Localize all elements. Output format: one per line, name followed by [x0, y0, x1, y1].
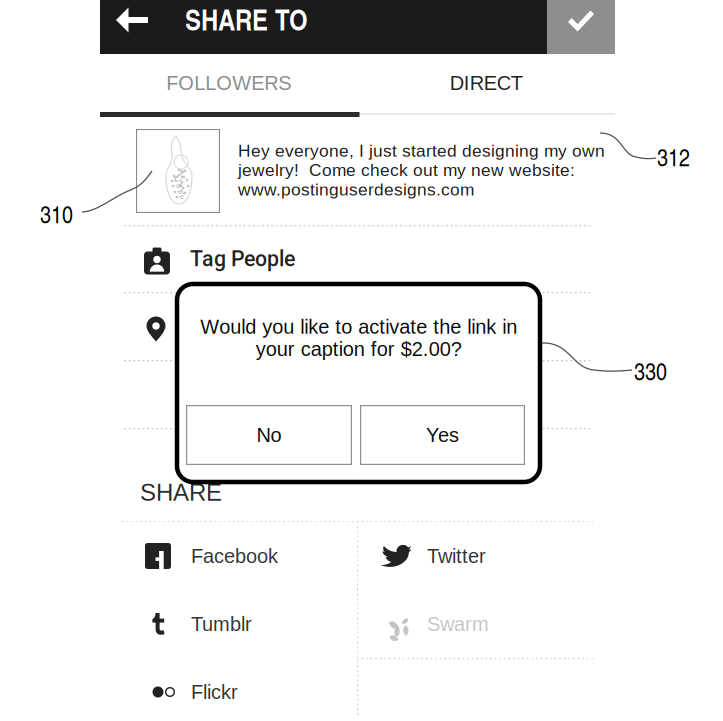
staticText: Tag People	[190, 246, 295, 271]
button[interactable]: FOLLOWERS	[100, 54, 357, 112]
staticText: Hey everyone, I just started designing m…	[238, 141, 605, 199]
button[interactable]: Yes	[360, 405, 525, 465]
staticText: Would you like to activate the link in y…	[200, 316, 517, 360]
button[interactable]: Twitter	[358, 522, 593, 590]
button[interactable]: No	[186, 405, 352, 465]
staticText: Yes	[426, 424, 459, 446]
button[interactable]: Swarm	[358, 590, 593, 658]
staticText: SHARE TO	[185, 0, 308, 39]
button[interactable]: Back	[104, 0, 160, 40]
button[interactable]: Share	[547, 0, 615, 42]
staticText: FOLLOWERS	[166, 72, 291, 94]
staticText: Twitter	[427, 545, 486, 567]
staticText: Flickr	[191, 681, 238, 703]
staticText: No	[256, 424, 281, 446]
button[interactable]: Tag People	[100, 227, 615, 291]
staticText: 310	[40, 197, 73, 230]
staticText: Swarm	[427, 613, 489, 635]
staticText: 312	[657, 140, 690, 173]
button[interactable]: DIRECT	[357, 54, 615, 112]
button[interactable]: Facebook	[122, 522, 357, 590]
staticText: SHARE	[140, 479, 222, 506]
staticText: Facebook	[191, 545, 278, 567]
staticText: 330	[634, 354, 667, 387]
button[interactable]: Tumblr	[122, 590, 357, 658]
button[interactable]: Add Location	[100, 297, 615, 361]
staticText: DIRECT	[450, 72, 523, 94]
staticText: Tumblr	[191, 613, 252, 635]
button[interactable]: Flickr	[122, 658, 357, 721]
